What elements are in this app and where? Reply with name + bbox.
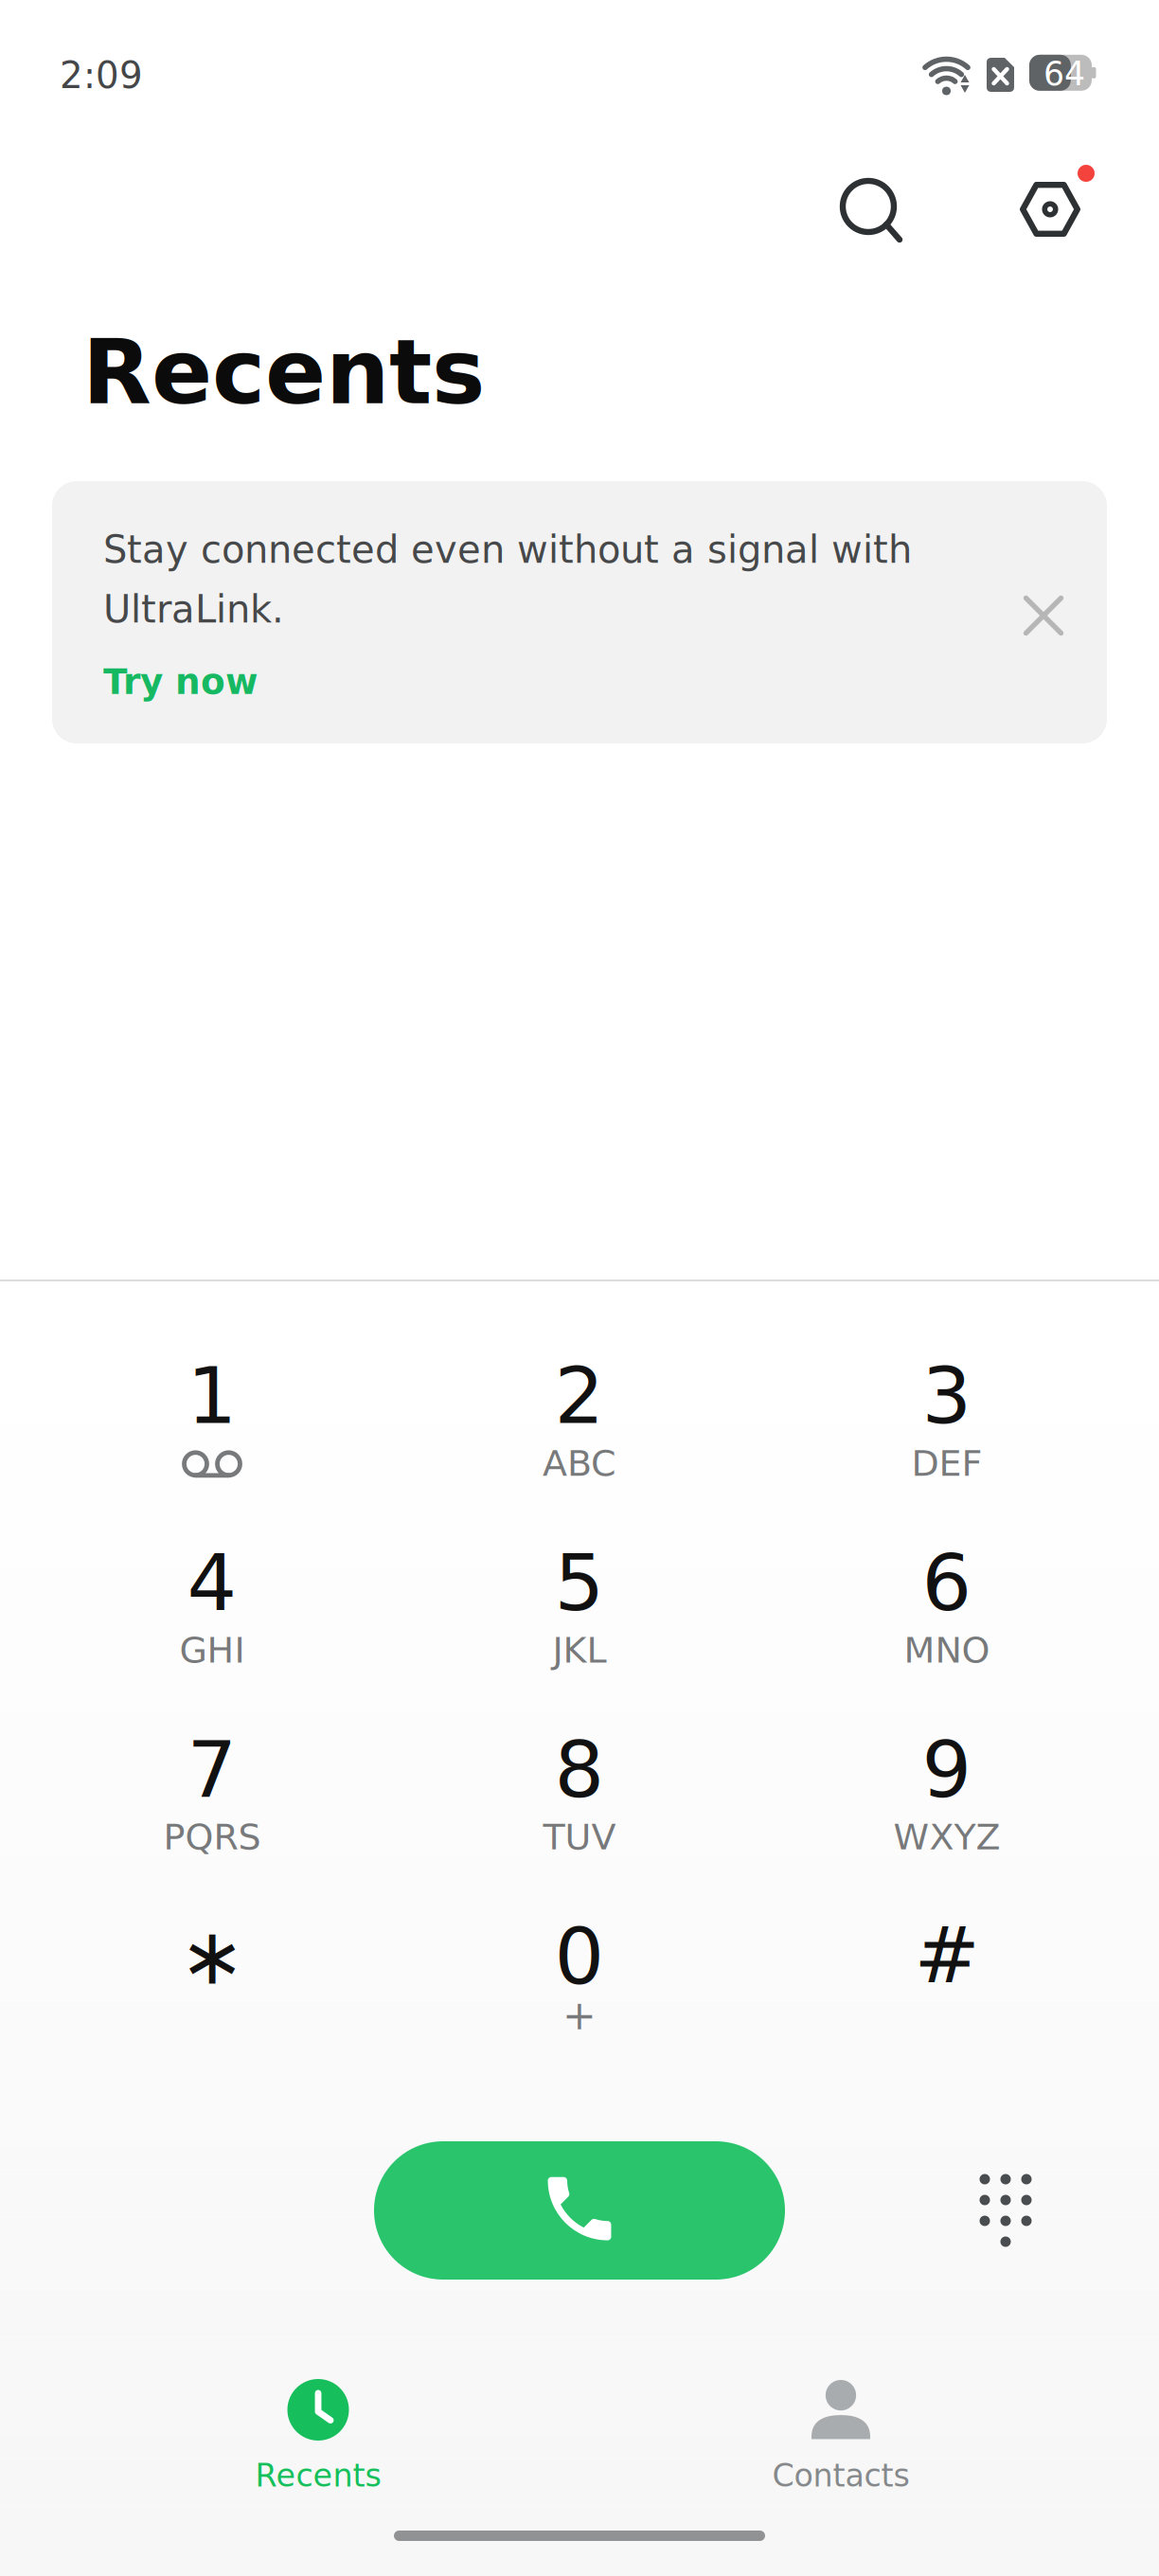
staticText: PQRS [163, 1816, 261, 1858]
staticText: 8 [554, 1724, 605, 1815]
staticText: Recents [82, 320, 485, 424]
button[interactable]: Dismiss [991, 563, 1096, 668]
staticText: GHI [179, 1629, 245, 1671]
staticText: # [914, 1910, 980, 2001]
staticText: ∗ [179, 1911, 245, 2002]
staticText: 4 [187, 1537, 237, 1628]
staticText: Stay connected even without a signal wit… [103, 528, 912, 572]
staticText: Try now [103, 661, 258, 702]
button[interactable]: Keypad [939, 2141, 1072, 2280]
staticText: MNO [904, 1629, 990, 1671]
button[interactable]: 8 [396, 1726, 763, 1913]
staticText: 1 [187, 1350, 237, 1442]
staticText: 2:09 [60, 54, 143, 97]
staticText: ABC [543, 1442, 616, 1484]
button[interactable]: 5 [396, 1539, 763, 1726]
button[interactable]: # [763, 1913, 1131, 2100]
staticText: + [562, 1992, 597, 2039]
button[interactable]: Search [810, 148, 933, 271]
staticText: 64 [1043, 55, 1085, 93]
staticText: 6 [922, 1537, 972, 1628]
button[interactable]: 0 [396, 1913, 763, 2100]
staticText: UltraLink. [103, 587, 284, 631]
staticText: 3 [922, 1350, 972, 1442]
button[interactable]: Stay connected even without a signal wit… [103, 528, 955, 707]
staticText: JKL [553, 1629, 606, 1671]
staticText: TUV [543, 1816, 616, 1858]
staticText: 5 [554, 1537, 605, 1628]
button[interactable]: Contacts [699, 2375, 983, 2517]
staticText: 0 [554, 1911, 605, 2002]
button[interactable]: 7 [28, 1726, 396, 1913]
staticText: 7 [187, 1724, 237, 1815]
button[interactable]: Settings [990, 148, 1114, 271]
button[interactable]: 4 [28, 1539, 396, 1726]
button[interactable]: 6 [763, 1539, 1131, 1726]
staticText: 2 [554, 1350, 605, 1442]
staticText: WXYZ [893, 1816, 1000, 1858]
button[interactable]: 2 [396, 1352, 763, 1539]
staticText: Contacts [772, 2457, 909, 2494]
button[interactable]: 3 [763, 1352, 1131, 1539]
button[interactable]: Recents [176, 2375, 460, 2517]
button[interactable]: 9 [763, 1726, 1131, 1913]
button[interactable]: 1 [28, 1352, 396, 1539]
staticText: 9 [922, 1724, 972, 1815]
staticText: Recents [255, 2457, 381, 2494]
button[interactable]: ∗ [28, 1913, 396, 2100]
button[interactable]: Call [374, 2141, 785, 2280]
staticText: DEF [911, 1442, 982, 1484]
